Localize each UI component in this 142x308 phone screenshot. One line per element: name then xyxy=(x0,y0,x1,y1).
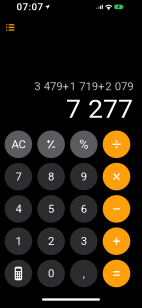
staticText: 7 xyxy=(15,170,21,183)
button[interactable]: History xyxy=(1,19,19,36)
button[interactable]: Calculator xyxy=(5,260,32,287)
button[interactable]: 6 xyxy=(70,195,98,223)
button[interactable]: 8 xyxy=(37,163,65,190)
button[interactable]: , xyxy=(70,260,98,287)
staticText: 8 xyxy=(48,170,54,183)
staticText: 3 479+1 719+2 079 xyxy=(34,80,133,93)
button[interactable]: % xyxy=(70,130,98,158)
button[interactable]: Toggle sign xyxy=(37,130,65,158)
button[interactable]: Add xyxy=(103,227,130,255)
button[interactable]: 9 xyxy=(70,163,98,190)
staticText: 6 xyxy=(81,202,87,216)
button[interactable]: 5 xyxy=(37,195,65,223)
staticText: 5 xyxy=(48,202,54,216)
staticText: AC xyxy=(11,138,25,151)
staticText: 07:07 xyxy=(16,1,43,13)
button[interactable]: 2 xyxy=(37,227,65,255)
button[interactable]: Subtract xyxy=(103,195,130,223)
button[interactable]: 0 xyxy=(37,260,65,287)
staticText: 4 xyxy=(15,202,21,216)
staticText: % xyxy=(79,137,88,152)
staticText: 1 xyxy=(15,235,21,248)
button[interactable]: Divide xyxy=(103,130,130,158)
button[interactable]: AC xyxy=(5,130,32,158)
staticText: 7 277 xyxy=(66,93,133,124)
button[interactable]: 4 xyxy=(5,195,32,223)
button[interactable]: Equals xyxy=(103,260,130,287)
button[interactable]: Multiply xyxy=(103,163,130,190)
staticText: , xyxy=(83,267,85,280)
staticText: 9 xyxy=(81,170,87,183)
button[interactable]: 3 xyxy=(70,227,98,255)
staticText: 3 xyxy=(81,235,87,248)
staticText: 2 xyxy=(48,235,54,248)
staticText: 0 xyxy=(48,267,54,280)
button[interactable]: 1 xyxy=(5,227,32,255)
button[interactable]: 7 xyxy=(5,163,32,190)
